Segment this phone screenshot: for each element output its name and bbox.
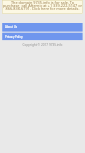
staticText: Privacy Policy xyxy=(5,35,23,39)
button[interactable]: Privacy Policy xyxy=(2,33,83,40)
button[interactable]: About Us xyxy=(2,23,83,31)
staticText: About Us xyxy=(5,25,18,29)
staticText: Copyright © 2017 9735.info xyxy=(0,43,85,47)
staticText: The domain 9735.info is for sale. To pur… xyxy=(2,0,83,11)
